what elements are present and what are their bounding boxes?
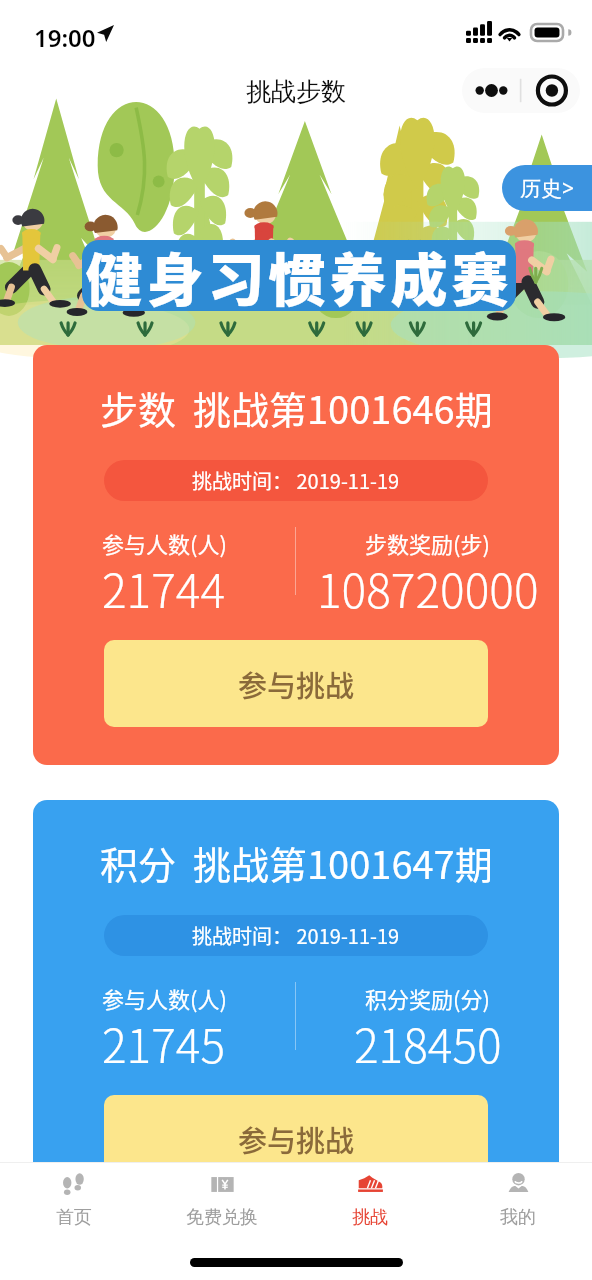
- button[interactable]: 免费兑换: [148, 1163, 296, 1233]
- staticText: 218450: [354, 1010, 502, 1077]
- staticText: 21744: [102, 555, 226, 622]
- staticText: 参与人数(人): [102, 527, 227, 559]
- staticText: 步数奖励(步): [365, 527, 490, 559]
- staticText: 免费兑换: [186, 1206, 258, 1229]
- button[interactable]: 历史>: [502, 165, 592, 211]
- button[interactable]: 我的: [444, 1163, 592, 1233]
- staticText: 健身习惯养成赛: [82, 235, 516, 318]
- staticText: 参与人数(人): [102, 982, 227, 1014]
- staticText: 步数 挑战第1001646期: [100, 380, 493, 435]
- staticText: 挑战时间： 2019-11-19: [192, 921, 400, 950]
- staticText: 21745: [102, 1010, 226, 1077]
- staticText: 积分 挑战第1001647期: [100, 835, 493, 890]
- staticText: 历史>: [520, 174, 575, 203]
- staticText: 首页: [56, 1206, 92, 1229]
- button[interactable]: More options: [462, 68, 580, 113]
- staticText: 挑战步数: [246, 76, 346, 107]
- staticText: 积分奖励(分): [365, 982, 490, 1014]
- button[interactable]: 参与挑战: [104, 1095, 488, 1182]
- staticText: 我的: [500, 1206, 536, 1229]
- button[interactable]: 首页: [0, 1163, 148, 1233]
- button[interactable]: 参与挑战: [104, 640, 488, 727]
- staticText: 19:00: [34, 21, 96, 54]
- button[interactable]: 积分 挑战第1001647期: [33, 800, 559, 1220]
- staticText: 挑战时间： 2019-11-19: [192, 466, 400, 495]
- staticText: 参与挑战: [238, 1118, 355, 1160]
- staticText: 挑战: [352, 1206, 388, 1229]
- button[interactable]: 挑战: [296, 1163, 444, 1233]
- staticText: 参与挑战: [238, 663, 355, 705]
- button[interactable]: 步数 挑战第1001646期: [33, 345, 559, 765]
- staticText: 108720000: [317, 555, 539, 622]
